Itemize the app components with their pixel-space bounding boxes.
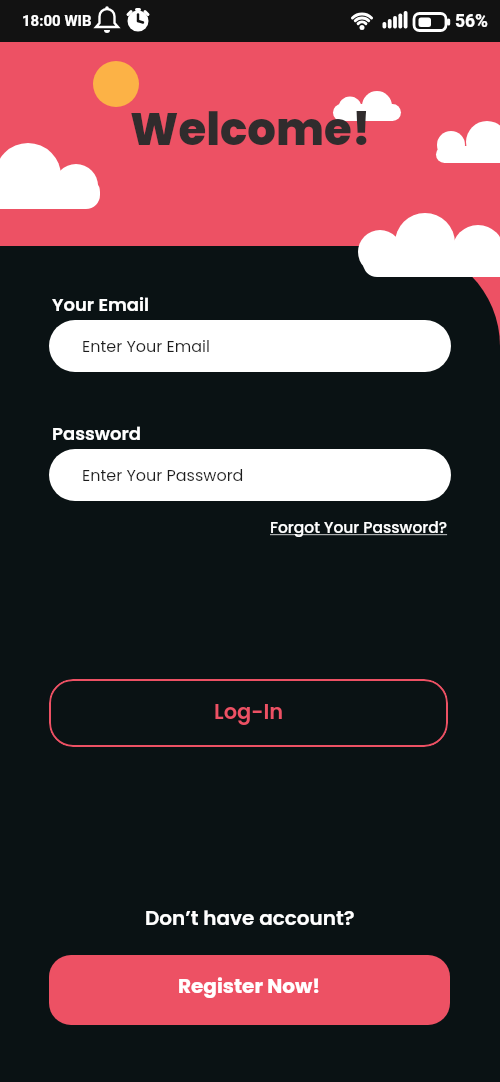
staticText: Your Email <box>52 292 150 317</box>
staticText: Register Now! <box>178 972 321 1000</box>
button[interactable]: Log-In <box>49 679 448 747</box>
staticText: Enter Your Password <box>82 464 244 486</box>
staticText: 56% <box>455 11 489 32</box>
button[interactable]: Enter Your Password <box>49 449 451 501</box>
button[interactable]: Enter Your Email <box>49 320 451 372</box>
button[interactable]: Forgot Your Password? <box>270 517 448 539</box>
staticText: Password <box>52 421 141 446</box>
staticText: 18:00 WIB <box>22 12 92 30</box>
staticText: Log-In <box>214 697 284 726</box>
button[interactable]: Register Now! <box>49 955 450 1025</box>
staticText: Enter Your Email <box>82 335 210 357</box>
staticText: Welcome! <box>130 98 371 161</box>
staticText: Don’t have account? <box>145 904 355 932</box>
